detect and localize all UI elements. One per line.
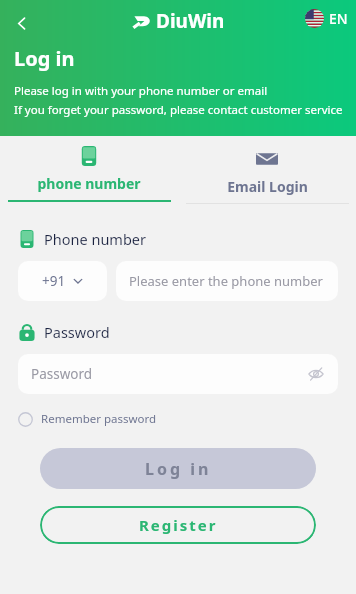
button[interactable]: Remember password: [18, 411, 157, 427]
button[interactable]: Log in: [40, 448, 316, 489]
button[interactable]: Show password: [304, 362, 328, 386]
staticText: phone number: [37, 174, 141, 193]
staticText: Register: [139, 515, 218, 535]
staticText: Password: [44, 322, 110, 342]
button[interactable]: phone number: [0, 136, 178, 210]
staticText: DiuWin: [156, 8, 225, 34]
button[interactable]: +91: [18, 261, 107, 301]
button[interactable]: Back: [4, 6, 38, 40]
button[interactable]: Email Login: [178, 136, 356, 210]
staticText: Remember password: [41, 411, 157, 427]
button[interactable]: Language English: [305, 9, 348, 28]
staticText: Please log in with your phone number or …: [14, 83, 268, 99]
staticText: If you forget your password, please cont…: [14, 102, 343, 118]
button[interactable]: Please enter the phone number: [116, 261, 338, 301]
staticText: Please enter the phone number: [129, 272, 323, 290]
button[interactable]: Register: [40, 506, 316, 544]
staticText: EN: [329, 9, 348, 28]
staticText: Phone number: [44, 229, 146, 249]
staticText: Email Login: [227, 177, 308, 196]
staticText: +91: [42, 272, 66, 290]
button[interactable]: Password: [18, 354, 338, 394]
staticText: Password: [31, 365, 93, 383]
staticText: Log in: [14, 45, 75, 72]
staticText: Log in: [145, 458, 212, 480]
